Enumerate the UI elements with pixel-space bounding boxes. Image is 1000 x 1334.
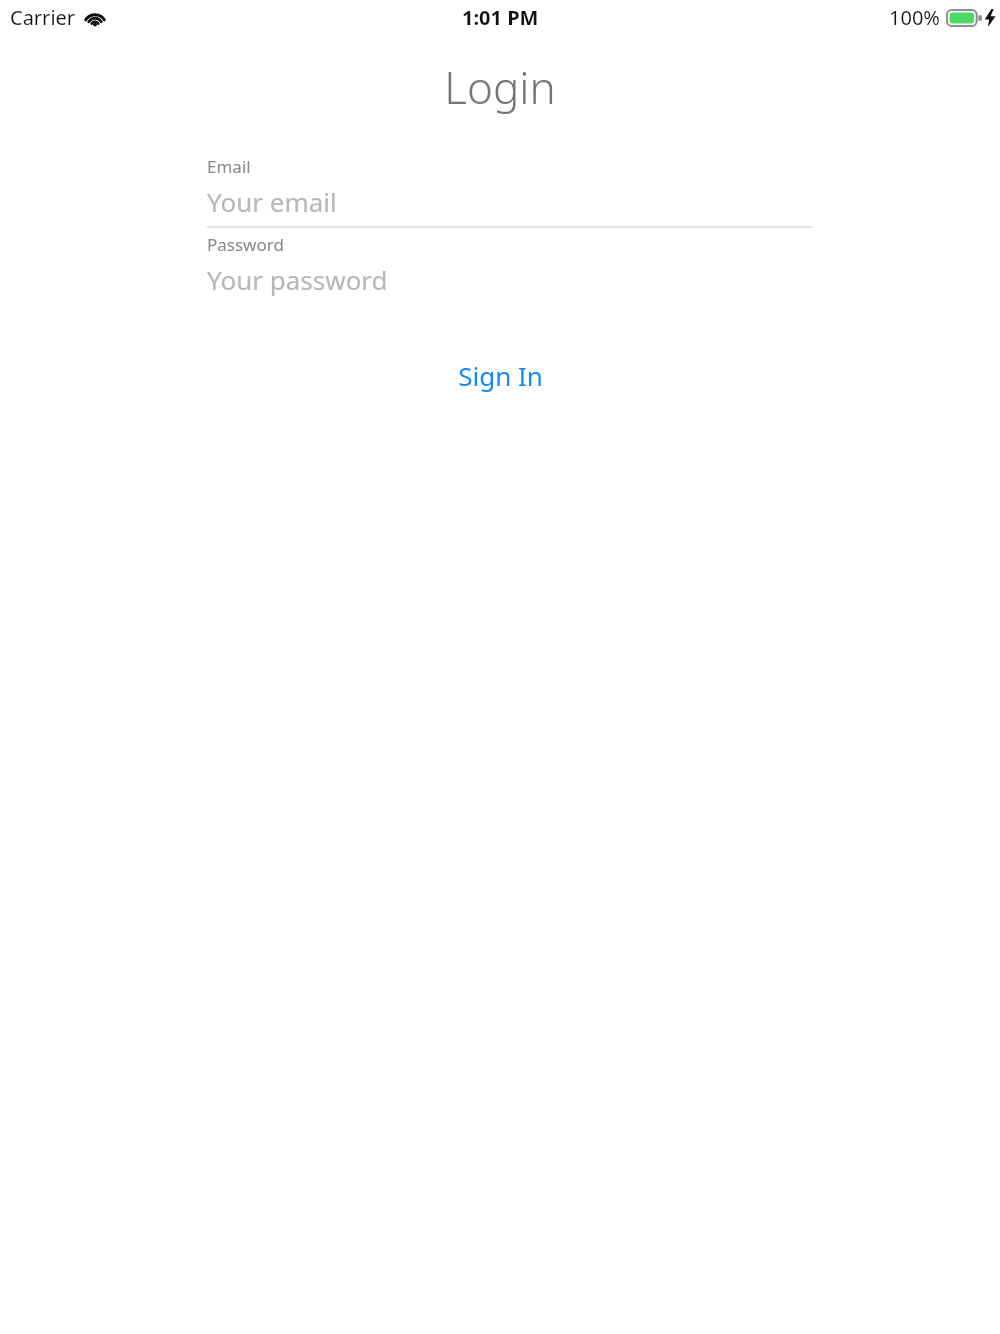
staticText: Your password <box>207 262 388 297</box>
staticText: Password <box>207 233 284 254</box>
staticText: Email <box>207 155 251 176</box>
staticText: Your email <box>207 184 337 219</box>
button[interactable]: Your password <box>207 254 812 304</box>
button[interactable]: Sign In <box>0 352 1000 398</box>
staticText: Sign In <box>458 358 543 393</box>
other: Battery full, charging <box>946 9 982 27</box>
staticText: 1:01 PM <box>462 4 539 31</box>
button[interactable]: Your email <box>207 176 812 226</box>
staticText: Carrier <box>10 4 76 31</box>
other: Wi-Fi signal <box>84 9 106 26</box>
staticText: Login <box>444 57 556 115</box>
staticText: 100% <box>889 4 940 31</box>
